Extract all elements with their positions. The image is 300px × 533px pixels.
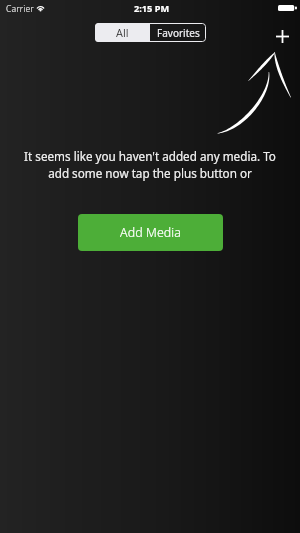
- button[interactable]: Add media: [266, 20, 298, 52]
- staticText: Carrier: [6, 3, 34, 15]
- staticText: 2:15 PM: [134, 2, 170, 15]
- staticText: Add Media: [120, 224, 182, 241]
- staticText: Favorites: [157, 26, 200, 40]
- staticText: It seems like you haven't added any medi…: [18, 148, 282, 181]
- button[interactable]: All: [95, 23, 150, 42]
- button[interactable]: Add Media: [78, 214, 223, 251]
- button[interactable]: Favorites: [150, 23, 206, 42]
- staticText: All: [116, 25, 129, 40]
